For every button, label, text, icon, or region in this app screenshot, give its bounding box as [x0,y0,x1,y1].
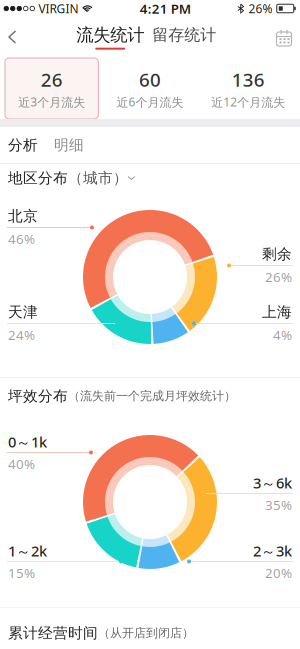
staticText: 35% [265,496,292,514]
staticText: 20% [265,564,292,582]
button[interactable]: 60 [103,58,197,119]
staticText: 留存统计 [152,25,216,45]
staticText: 24% [8,326,35,344]
staticText: 流失统计 [76,24,144,46]
staticText: 明细 [54,136,84,154]
staticText: 1～2k [8,541,47,561]
staticText: （从开店到闭店） [98,626,194,640]
staticText: 26 [41,67,63,92]
button[interactable]: 分析 [8,136,38,154]
staticText: 0～1k [8,432,47,452]
staticText: 近12个月流失 [211,94,285,110]
staticText: 近3个月流失 [18,94,85,110]
staticText: 坪效分布 [8,387,68,405]
button[interactable]: 136 [202,58,295,119]
button[interactable]: 明细 [54,136,84,154]
staticText: 天津 [8,303,38,321]
staticText: 分析 [8,136,38,154]
staticText: 4% [273,326,292,344]
staticText: 46% [8,230,35,248]
button[interactable]: Back [0,22,24,52]
staticText: 北京 [8,207,38,225]
staticText: 近6个月流失 [116,94,183,110]
staticText: 60 [139,67,161,92]
staticText: （流失前一个完成月坪效统计） [68,389,236,403]
button[interactable]: Calendar [268,22,300,52]
staticText: 剩余 [262,245,292,263]
staticText: 地区分布 [8,169,68,187]
staticText: 2～3k [253,541,292,561]
staticText: 上海 [262,303,292,321]
staticText: 4:21 PM [140,0,191,17]
staticText: 累计经营时间 [8,624,98,642]
button[interactable]: 26 [5,58,98,119]
staticText: 15% [8,564,35,582]
staticText: 40% [8,455,35,473]
staticText: 26% [248,0,272,16]
staticText: （城市） [68,169,128,187]
button[interactable]: 流失统计 [76,24,144,50]
staticText: 136 [232,67,265,92]
staticText: VIRGIN [38,0,78,16]
staticText: 26% [265,268,292,286]
staticText: 3～6k [253,473,292,493]
button[interactable]: 留存统计 [152,27,216,47]
